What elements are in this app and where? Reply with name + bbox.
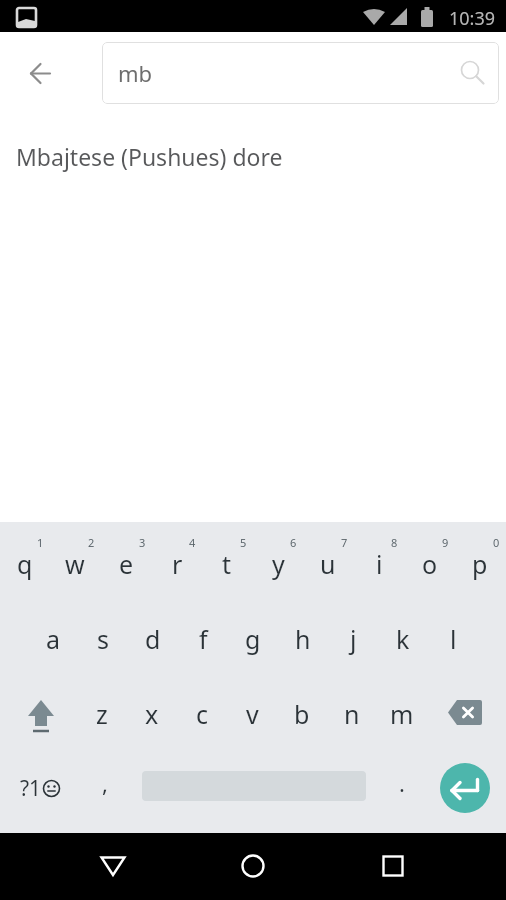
button[interactable]: z: [77, 676, 127, 751]
button[interactable]: r: [152, 527, 202, 601]
staticText: u: [320, 547, 336, 581]
button[interactable]: h: [278, 601, 328, 676]
button[interactable]: ,: [85, 745, 125, 820]
staticText: q: [17, 547, 33, 581]
staticText: p: [472, 547, 488, 581]
button[interactable]: y: [253, 527, 303, 601]
staticText: .: [399, 768, 405, 798]
staticText: e: [119, 547, 134, 581]
button[interactable]: [369, 842, 417, 890]
staticText: ,: [102, 768, 108, 798]
button[interactable]: q: [0, 527, 50, 601]
button[interactable]: f: [178, 601, 228, 676]
button[interactable]: n: [327, 676, 377, 751]
button[interactable]: a: [28, 601, 78, 676]
staticText: l: [450, 622, 457, 656]
button[interactable]: t: [202, 527, 252, 601]
button[interactable]: e: [101, 527, 151, 601]
staticText: h: [295, 622, 311, 656]
staticText: mb: [118, 58, 153, 88]
button[interactable]: l: [428, 601, 478, 676]
button[interactable]: p: [455, 527, 505, 601]
staticText: i: [376, 547, 383, 581]
staticText: z: [96, 697, 108, 731]
staticText: 7: [341, 535, 348, 550]
staticText: 2: [88, 535, 95, 550]
button[interactable]: b: [277, 676, 327, 751]
button[interactable]: u: [303, 527, 353, 601]
staticText: r: [172, 547, 183, 581]
button[interactable]: ?1: [0, 751, 81, 826]
staticText: 1: [37, 535, 44, 550]
button[interactable]: [432, 676, 498, 751]
button[interactable]: j: [328, 601, 378, 676]
staticText: 4: [189, 535, 196, 550]
staticText: j: [350, 622, 357, 656]
staticText: y: [272, 547, 285, 581]
button[interactable]: d: [128, 601, 178, 676]
staticText: g: [245, 622, 261, 656]
staticText: 10:39: [449, 6, 496, 31]
staticText: c: [196, 697, 209, 731]
staticText: 9: [442, 535, 449, 550]
button[interactable]: m: [377, 676, 427, 751]
staticText: 8: [391, 535, 398, 550]
staticText: w: [65, 547, 85, 581]
staticText: n: [344, 697, 360, 731]
button[interactable]: o: [405, 527, 455, 601]
staticText: d: [145, 622, 161, 656]
staticText: 3: [139, 535, 146, 550]
staticText: Mbajtese (Pushues) dore: [16, 141, 283, 172]
button[interactable]: i: [354, 527, 404, 601]
button[interactable]: [8, 676, 74, 751]
staticText: f: [199, 622, 208, 656]
staticText: a: [46, 622, 61, 656]
button[interactable]: g: [228, 601, 278, 676]
button[interactable]: .: [382, 745, 422, 820]
button[interactable]: mb: [102, 42, 499, 104]
button[interactable]: x: [127, 676, 177, 751]
button[interactable]: [440, 763, 490, 813]
staticText: o: [422, 547, 438, 581]
staticText: s: [97, 622, 109, 656]
button[interactable]: [16, 49, 64, 97]
button[interactable]: Mbajtese (Pushues) dore: [0, 128, 506, 184]
staticText: x: [145, 697, 159, 731]
button[interactable]: w: [50, 527, 100, 601]
button[interactable]: v: [227, 676, 277, 751]
staticText: k: [396, 622, 410, 656]
staticText: ?1: [20, 774, 42, 803]
staticText: m: [390, 697, 414, 731]
button[interactable]: k: [378, 601, 428, 676]
button[interactable]: [89, 842, 137, 890]
staticText: 5: [240, 535, 247, 550]
button[interactable]: s: [78, 601, 128, 676]
button[interactable]: c: [177, 676, 227, 751]
staticText: b: [294, 697, 310, 731]
staticText: 6: [290, 535, 297, 550]
button[interactable]: [229, 842, 277, 890]
staticText: t: [222, 547, 232, 581]
staticText: 0: [493, 535, 500, 550]
staticText: v: [246, 697, 259, 731]
